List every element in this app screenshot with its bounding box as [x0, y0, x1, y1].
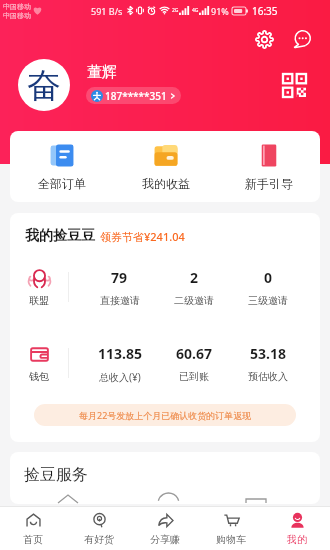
- staticText: 直接邀请: [100, 294, 140, 307]
- staticText: 我的捡豆豆: [25, 227, 95, 245]
- staticText: 领券节省¥241.04: [100, 229, 185, 244]
- staticText: 分享赚: [150, 533, 180, 546]
- staticText: 2: [190, 268, 199, 287]
- button[interactable]: 新手引导: [217, 143, 320, 191]
- staticText: 2G: [172, 7, 179, 14]
- button[interactable]: QR code: [281, 72, 307, 98]
- staticText: 三级邀请: [248, 294, 288, 307]
- staticText: 187*****351: [105, 89, 167, 103]
- button[interactable]: 53.18: [231, 343, 305, 383]
- staticText: 预估收入: [248, 370, 288, 383]
- button[interactable]: 联盟: [10, 267, 68, 307]
- button[interactable]: 全部订单: [10, 143, 114, 191]
- staticText: 首页: [23, 533, 43, 546]
- staticText: 每月22号发放上个月已确认收货的订单返现: [79, 409, 252, 421]
- staticText: 4G: [192, 7, 199, 14]
- button[interactable]: 60.67: [157, 343, 231, 383]
- staticText: 有好货: [84, 533, 114, 546]
- staticText: 16:35: [252, 4, 278, 18]
- staticText: 捡豆服务: [24, 465, 88, 485]
- button[interactable]: 首页: [0, 512, 66, 546]
- staticText: 113.85: [98, 344, 142, 363]
- staticText: 二级邀请: [174, 294, 214, 307]
- button[interactable]: 我的: [264, 512, 330, 546]
- staticText: 0: [264, 268, 273, 287]
- staticText: 我的收益: [142, 176, 190, 191]
- button[interactable]: 钱包: [10, 343, 68, 383]
- staticText: 新手引导: [245, 176, 293, 191]
- button[interactable]: 2: [157, 267, 231, 307]
- button[interactable]: 187*****351: [86, 87, 181, 104]
- button[interactable]: 79: [82, 267, 157, 307]
- button[interactable]: 0: [231, 267, 305, 307]
- staticText: 购物车: [216, 533, 246, 546]
- staticText: 我的: [287, 533, 307, 546]
- staticText: 79: [111, 268, 128, 287]
- staticText: 全部订单: [38, 176, 86, 191]
- button[interactable]: 我的收益: [114, 143, 217, 191]
- staticText: 联盟: [29, 294, 49, 307]
- staticText: 奋: [27, 64, 61, 107]
- staticText: 中国移动: [3, 11, 31, 20]
- button[interactable]: 奋: [18, 59, 70, 111]
- button[interactable]: 购物车: [198, 512, 264, 546]
- staticText: 总收入(¥): [99, 370, 141, 384]
- button[interactable]: Settings: [252, 27, 276, 51]
- button[interactable]: 113.85: [82, 343, 157, 384]
- staticText: 91%: [211, 5, 229, 17]
- button[interactable]: 分享赚: [132, 512, 198, 546]
- button[interactable]: 有好货: [66, 512, 132, 546]
- staticText: 董辉: [87, 63, 117, 82]
- staticText: 钱包: [29, 370, 49, 383]
- staticText: 60.67: [176, 344, 212, 363]
- staticText: 53.18: [250, 344, 286, 363]
- staticText: 中国移动: [3, 2, 31, 11]
- staticText: 591 B/s: [91, 5, 123, 17]
- button[interactable]: Messages: [290, 27, 314, 51]
- staticText: 已到账: [179, 370, 209, 383]
